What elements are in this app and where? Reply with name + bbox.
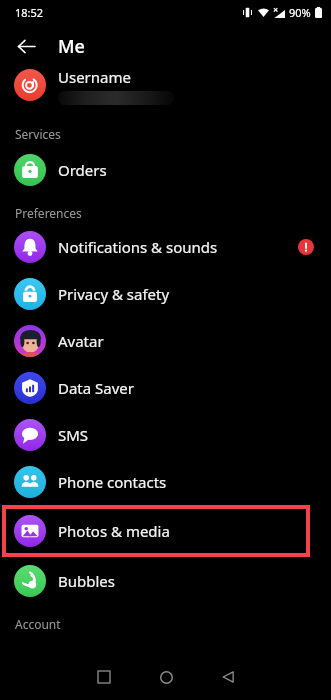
button[interactable]: Data Saver xyxy=(0,364,331,411)
staticText: Orders xyxy=(58,160,107,180)
staticText: Bubbles xyxy=(58,571,115,591)
button[interactable]: Recent apps xyxy=(81,654,127,700)
staticText: 90% xyxy=(289,5,311,20)
button[interactable]: Bubbles xyxy=(0,557,331,604)
button[interactable]: Privacy & safety xyxy=(0,270,331,317)
staticText: Photos & media xyxy=(58,521,170,541)
button[interactable]: Phone contacts xyxy=(0,458,331,505)
button[interactable]: Photos & media xyxy=(0,505,331,557)
button[interactable]: Home xyxy=(143,654,189,700)
button[interactable]: Navigate up xyxy=(6,26,46,66)
button[interactable]: SMS xyxy=(0,411,331,458)
staticText: Username xyxy=(58,67,131,87)
button[interactable]: Avatar xyxy=(0,317,331,364)
staticText: Privacy & safety xyxy=(58,284,170,304)
button[interactable]: Orders xyxy=(0,146,331,193)
button[interactable]: Back xyxy=(205,654,251,700)
button[interactable]: Notifications & sounds xyxy=(0,223,331,270)
staticText: Data Saver xyxy=(58,378,135,398)
button[interactable]: Username xyxy=(0,68,331,116)
staticText: Phone contacts xyxy=(58,472,167,492)
staticText: 18:52 xyxy=(15,5,44,20)
staticText: Avatar xyxy=(58,331,104,351)
staticText: Services xyxy=(15,126,331,142)
staticText: Preferences xyxy=(15,205,331,221)
staticText: Me xyxy=(58,34,85,59)
staticText: SMS xyxy=(58,425,89,445)
staticText: Account xyxy=(15,616,331,632)
staticText: Notifications & sounds xyxy=(58,237,218,257)
